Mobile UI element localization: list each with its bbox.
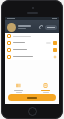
button[interactable]: Document: [32, 81, 59, 94]
button[interactable]: [45, 25, 57, 30]
button[interactable]: [8, 94, 56, 101]
button[interactable]: [5, 46, 59, 53]
button[interactable]: [5, 33, 59, 39]
button[interactable]: Scan: [5, 81, 32, 94]
button[interactable]: Add: [5, 53, 59, 60]
button[interactable]: Call: [39, 25, 44, 30]
button[interactable]: [5, 39, 59, 46]
button[interactable]: Add: [53, 55, 57, 59]
button[interactable]: Profile: [7, 23, 16, 32]
